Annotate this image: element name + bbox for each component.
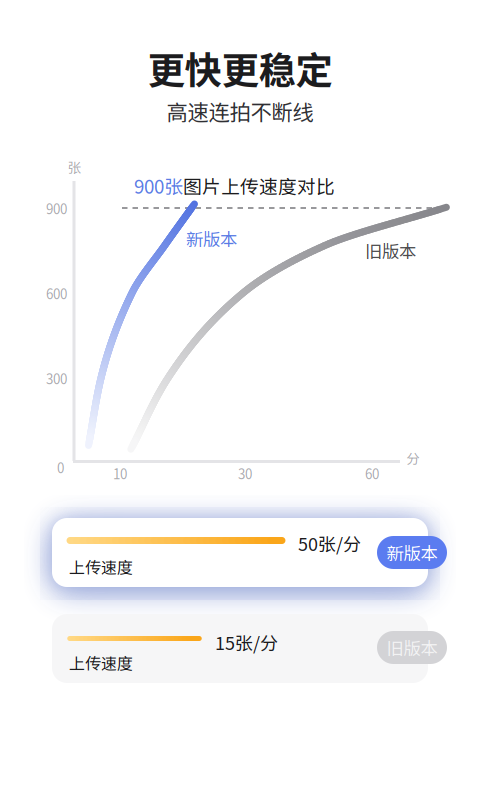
staticText: 高速连拍不断线	[166, 96, 313, 126]
staticText: 张	[67, 157, 80, 177]
staticText: 900张	[134, 172, 183, 199]
staticText: 上传速度	[69, 651, 133, 674]
staticText: 900	[46, 199, 67, 218]
staticText: 新版本	[386, 540, 437, 565]
staticText: 图片上传速度对比	[183, 172, 335, 199]
button[interactable]: 新版本	[377, 536, 447, 569]
staticText: 旧版本	[365, 238, 416, 263]
staticText: 上传速度	[69, 555, 133, 578]
staticText: 600	[46, 284, 67, 303]
staticText: 分	[406, 448, 419, 468]
staticText: 300	[46, 369, 67, 388]
staticText: 旧版本	[386, 635, 437, 660]
staticText: 60	[365, 464, 379, 483]
staticText: 0	[57, 458, 64, 477]
staticText: 新版本	[186, 226, 237, 251]
staticText: 30	[238, 464, 252, 483]
button[interactable]: 旧版本	[377, 631, 447, 664]
staticText: 更快更稳定	[147, 41, 332, 95]
staticText: 50张/分	[298, 530, 361, 556]
staticText: 10	[113, 464, 127, 483]
staticText: 15张/分	[215, 629, 278, 655]
